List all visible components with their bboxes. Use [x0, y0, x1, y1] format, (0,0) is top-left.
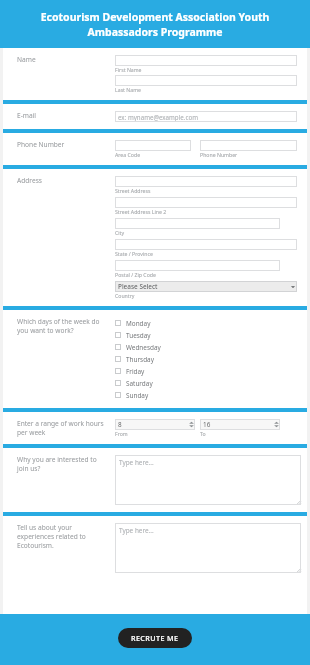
button[interactable]: Saturday [115, 377, 153, 389]
staticText: Monday [126, 319, 151, 328]
button[interactable] [115, 218, 280, 229]
button[interactable]: Monday [115, 317, 151, 329]
staticText: 16 [203, 420, 273, 429]
staticText: Saturday [126, 379, 153, 388]
button[interactable] [115, 55, 297, 66]
staticText: Why you are interested to join us? [17, 455, 109, 473]
button[interactable] [115, 239, 297, 250]
staticText: From [115, 430, 128, 437]
button[interactable] [115, 75, 297, 86]
staticText: Address [17, 176, 109, 185]
button[interactable]: Thursday [115, 353, 154, 365]
staticText: Sunday [126, 391, 149, 400]
button[interactable]: Sunday [115, 389, 149, 401]
staticText: First Name [115, 66, 142, 73]
button[interactable]: Tuesday [115, 329, 151, 341]
button[interactable] [115, 197, 297, 208]
staticText: Ecotourism Development Association Youth… [16, 10, 294, 39]
staticText: Please Select [118, 282, 289, 291]
staticText: Postal / Zip Code [115, 271, 156, 278]
staticText: Area Code [115, 151, 141, 158]
staticText: To [200, 430, 206, 437]
staticText: State / Province [115, 250, 153, 257]
staticText: Street Address [115, 187, 151, 194]
button[interactable]: 16 [200, 419, 280, 430]
other: Select country [289, 283, 297, 291]
staticText: Tuesday [126, 331, 151, 340]
staticText: Type here... [119, 458, 154, 467]
button[interactable] [200, 140, 297, 151]
staticText: Type here... [119, 526, 154, 535]
staticText: City [115, 229, 125, 236]
button[interactable] [115, 260, 280, 271]
button[interactable]: RECRUTE ME [118, 628, 192, 648]
staticText: E-mail [17, 111, 109, 120]
staticText: Tell us about your experiences related t… [17, 523, 109, 550]
button[interactable]: Type here... [115, 455, 301, 505]
staticText: Friday [126, 367, 145, 376]
button[interactable]: 8 [115, 419, 195, 430]
staticText: 8 [118, 420, 188, 429]
button[interactable]: ex: myname@example.com [115, 111, 297, 122]
staticText: Phone Number [17, 140, 109, 149]
staticText: Wednesday [126, 343, 161, 352]
staticText: Name [17, 55, 109, 64]
staticText: Thursday [126, 355, 154, 364]
button[interactable]: Type here... [115, 523, 301, 573]
button[interactable]: Please Select [115, 281, 297, 292]
staticText: Street Address Line 2 [115, 208, 167, 215]
staticText: Phone Number [200, 151, 238, 158]
staticText: ex: myname@example.com [118, 113, 198, 121]
staticText: RECRUTE ME [131, 633, 179, 643]
button[interactable] [115, 176, 297, 187]
button[interactable] [115, 140, 191, 151]
staticText: Last Name [115, 86, 141, 93]
button[interactable]: Friday [115, 365, 145, 377]
staticText: Enter a range of work hours per week [17, 419, 109, 437]
button[interactable]: Wednesday [115, 341, 161, 353]
staticText: Which days of the week do you want to wo… [17, 317, 109, 335]
staticText: Country [115, 292, 135, 299]
